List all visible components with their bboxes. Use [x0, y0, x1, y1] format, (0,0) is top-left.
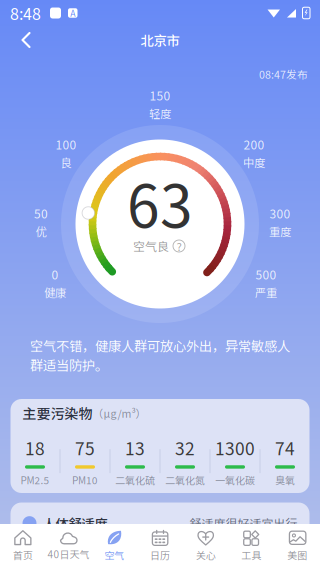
staticText: 一氧化碳 [215, 473, 255, 487]
staticText: 50 [34, 205, 48, 222]
staticText: 40日天气 [48, 547, 90, 561]
staticText: 人体舒适度 [42, 513, 107, 533]
button[interactable]: 关心 [183, 524, 229, 568]
staticText: 1300 [215, 435, 255, 460]
staticText: 150 [149, 87, 170, 104]
staticText: 优 [35, 223, 46, 239]
staticText: 良 [60, 154, 71, 170]
staticText: 300 [269, 205, 290, 222]
staticText: 中度 [243, 154, 265, 170]
staticText: 500 [255, 266, 276, 283]
staticText: 二氧化氮 [165, 473, 205, 487]
staticText: 工具 [241, 548, 261, 562]
staticText: 75 [75, 435, 95, 460]
button[interactable]: Back [9, 20, 42, 60]
staticText: ? [176, 238, 181, 254]
staticText: PM2.5 [20, 473, 49, 487]
staticText: 首页 [13, 548, 33, 562]
button[interactable]: 空气 [91, 524, 137, 568]
staticText: 空气不错，健康人群可放心外出，异常敏感人群适当防护。 [30, 336, 290, 374]
staticText: 08:47发布 [259, 66, 308, 82]
staticText: 严重 [255, 284, 277, 300]
staticText: （μg/m³） [92, 405, 146, 421]
staticText: 关心 [196, 548, 216, 562]
staticText: 63 [127, 159, 193, 244]
staticText: 空气 [104, 548, 124, 562]
staticText: 北京市 [140, 30, 179, 50]
staticText: 舒适度很好适宜出行 [189, 514, 297, 532]
staticText: A [70, 7, 75, 19]
staticText: 200 [243, 136, 264, 153]
button[interactable]: 40日天气 [46, 524, 91, 568]
staticText: 日历 [150, 548, 170, 562]
staticText: 健康 [44, 284, 66, 300]
staticText: 空气良 [133, 237, 169, 255]
staticText: 32 [175, 435, 195, 460]
button[interactable]: 美图 [274, 524, 320, 568]
staticText: 100 [55, 136, 76, 153]
staticText: 8:48 [10, 1, 41, 25]
button[interactable]: 日历 [137, 524, 183, 568]
button[interactable]: 首页 [0, 524, 46, 568]
staticText: 74 [275, 435, 295, 460]
staticText: 0 [51, 266, 58, 283]
button[interactable]: 工具 [229, 524, 274, 568]
staticText: 美图 [287, 548, 307, 562]
staticText: 臭氧 [275, 473, 295, 487]
staticText: 二氧化硫 [115, 473, 155, 487]
staticText: 18 [25, 435, 45, 460]
staticText: 轻度 [149, 105, 171, 121]
staticText: 重度 [269, 223, 291, 239]
staticText: 主要污染物 [22, 403, 92, 423]
staticText: PM10 [72, 473, 98, 487]
staticText: 13 [125, 435, 145, 460]
